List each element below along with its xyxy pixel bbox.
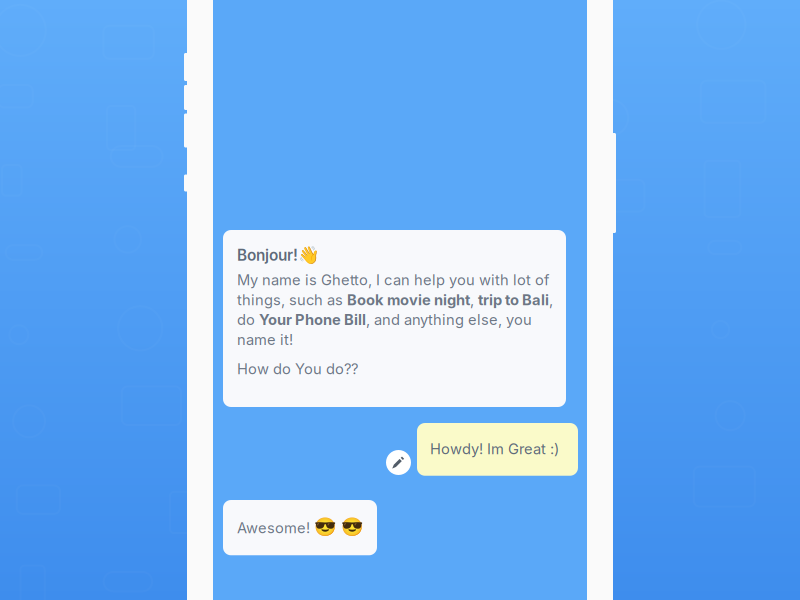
button[interactable]: Howdy! Im Great :) (417, 423, 578, 476)
button[interactable]: Edit message (386, 450, 411, 475)
staticText: Bonjour!👋 (237, 245, 320, 265)
staticText: My name is Ghetto, I can help you with l… (237, 271, 553, 349)
button[interactable]: Awesome! 😎 😎 (223, 500, 377, 555)
staticText: Howdy! Im Great :) (430, 440, 559, 458)
button[interactable]: Bonjour!👋 (223, 230, 566, 407)
staticText: How do You do?? (237, 360, 358, 378)
staticText: Awesome! 😎 😎 (237, 516, 363, 537)
